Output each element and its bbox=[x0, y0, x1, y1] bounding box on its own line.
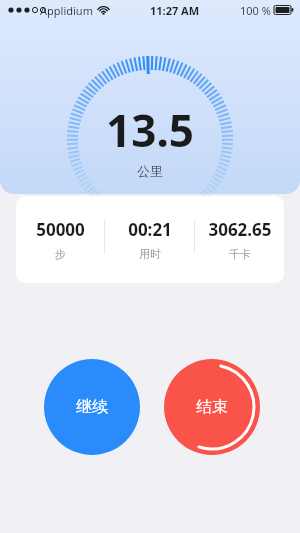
staticText: 11:27 AM bbox=[150, 3, 200, 18]
button[interactable]: 继续 bbox=[44, 359, 140, 455]
staticText: 千卡 bbox=[229, 247, 251, 261]
staticText: 继续 bbox=[76, 397, 108, 417]
staticText: Applidium bbox=[40, 3, 93, 18]
staticText: 13.5 bbox=[106, 100, 194, 160]
staticText: 3062.65 bbox=[208, 218, 272, 241]
staticText: 00:21 bbox=[128, 218, 172, 241]
button[interactable]: 结束 bbox=[164, 359, 260, 455]
staticText: 步 bbox=[55, 247, 66, 261]
staticText: 结束 bbox=[196, 397, 228, 417]
staticText: 50000 bbox=[36, 218, 85, 241]
staticText: 用时 bbox=[139, 247, 161, 261]
button[interactable]: 50000 bbox=[16, 218, 104, 261]
staticText: 100 % bbox=[240, 3, 271, 18]
staticText: 公里 bbox=[137, 163, 163, 179]
button[interactable]: 00:21 bbox=[105, 218, 194, 261]
button[interactable]: 3062.65 bbox=[195, 218, 284, 261]
